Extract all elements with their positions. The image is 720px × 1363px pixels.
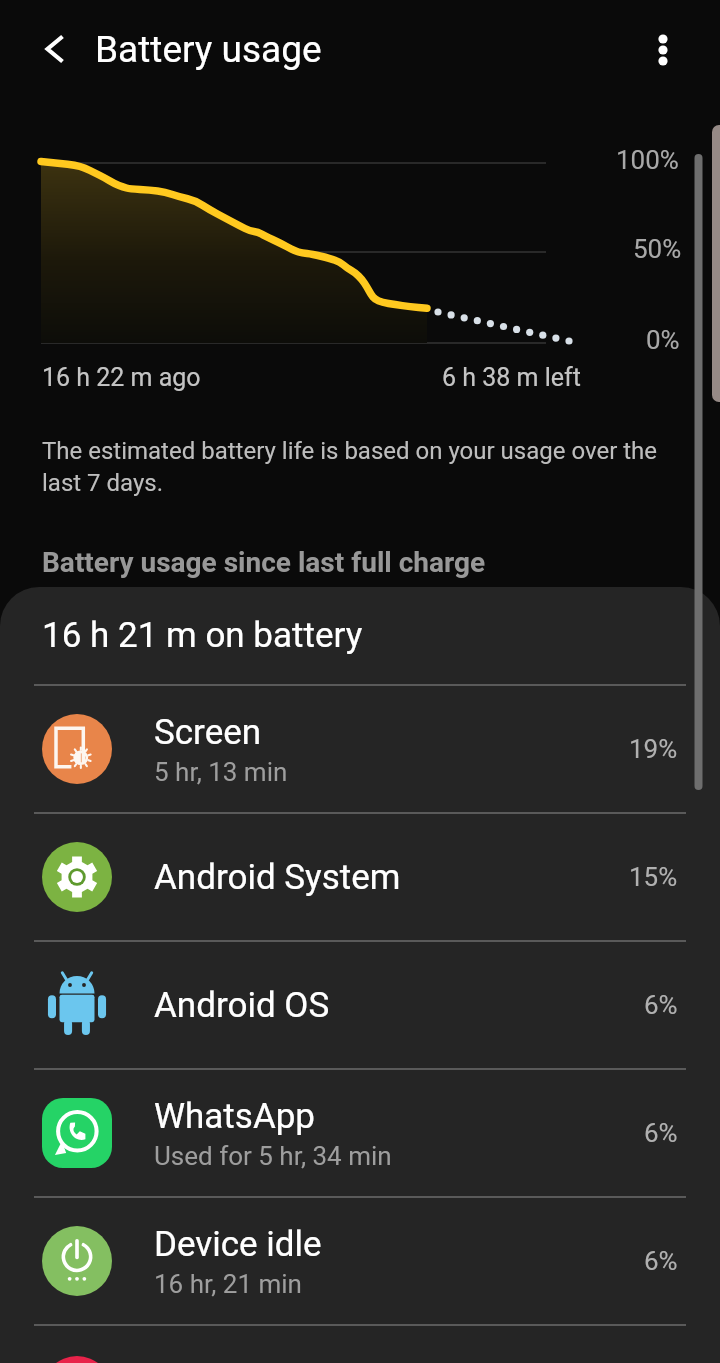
- staticText: Device idle: [154, 1224, 322, 1265]
- button[interactable]: Android System: [0, 814, 720, 940]
- staticText: 15%: [629, 862, 678, 892]
- staticText: 16 h 21 m on battery: [42, 615, 363, 656]
- button[interactable]: WhatsApp: [0, 1070, 720, 1196]
- staticText: The estimated battery life is based on y…: [42, 437, 658, 496]
- button[interactable]: Screen: [0, 686, 720, 812]
- staticText: Battery usage: [95, 28, 322, 71]
- staticText: 100%: [616, 145, 679, 175]
- button[interactable]: Back: [19, 13, 91, 85]
- staticText: 16 hr, 21 min: [154, 1269, 302, 1299]
- button[interactable]: Device idle: [0, 1198, 720, 1324]
- staticText: 6%: [644, 990, 678, 1020]
- staticText: WhatsApp: [154, 1096, 316, 1137]
- staticText: Android OS: [154, 985, 330, 1026]
- staticText: Used for 5 hr, 34 min: [154, 1141, 392, 1171]
- staticText: 6%: [644, 1118, 678, 1148]
- staticText: Battery usage since last full charge: [42, 546, 486, 579]
- staticText: 6%: [644, 1246, 678, 1276]
- staticText: 6 h 38 m left: [442, 363, 581, 392]
- staticText: 50%: [633, 234, 682, 264]
- button[interactable]: Android OS: [0, 942, 720, 1068]
- staticText: 5 hr, 13 min: [154, 757, 288, 787]
- staticText: 19%: [629, 734, 678, 764]
- staticText: 16 h 22 m ago: [42, 363, 201, 392]
- staticText: 0%: [646, 325, 680, 355]
- staticText: Android System: [154, 857, 401, 898]
- staticText: Screen: [154, 712, 262, 753]
- button[interactable]: More options: [627, 14, 699, 86]
